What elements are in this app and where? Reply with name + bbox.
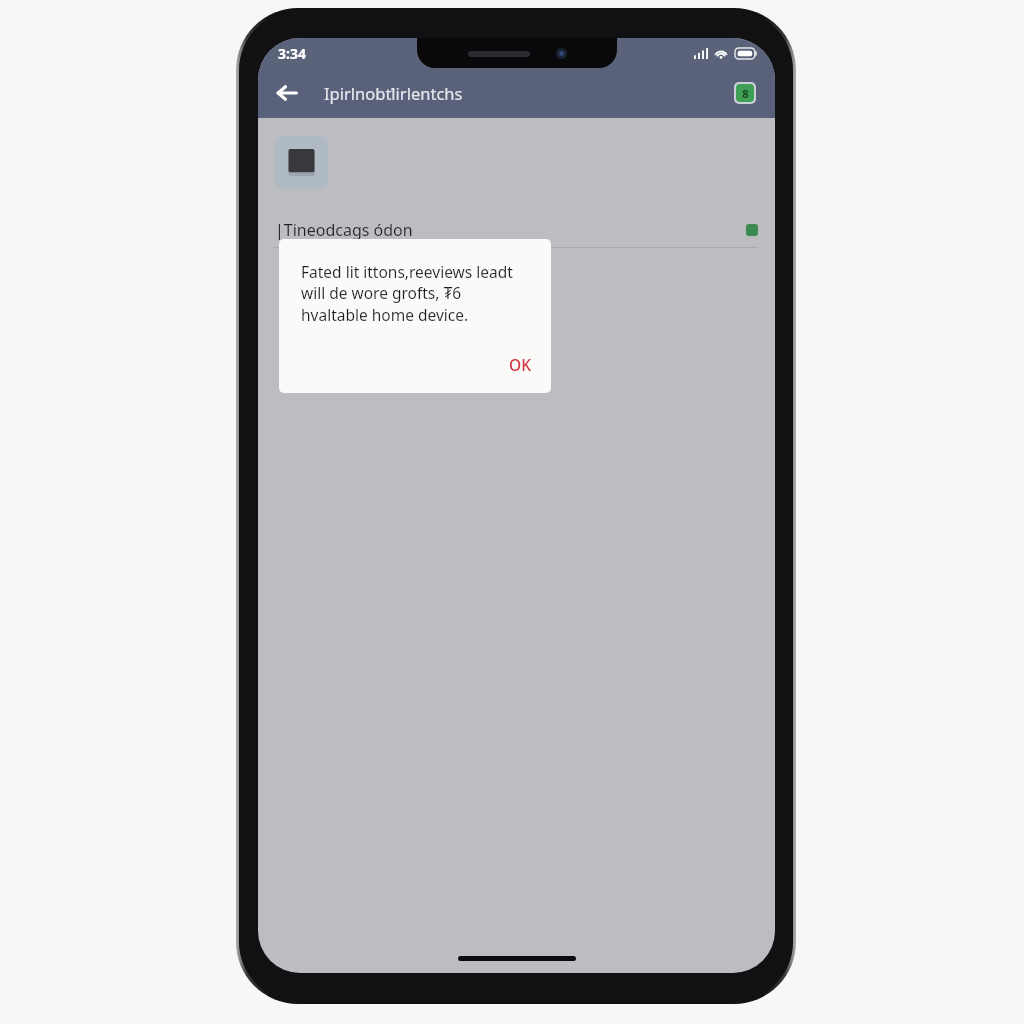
button[interactable]: OK [489, 348, 551, 381]
staticText: |Tineodcags ódon [275, 219, 746, 241]
button[interactable]: Status badge [725, 73, 765, 113]
button[interactable]: |Tineodcags ódon [258, 213, 775, 247]
staticText: Ipirlnobťlirlentchs [324, 82, 725, 104]
staticText: 3:34 [278, 44, 306, 63]
staticText: Fated lit ittons,reeviews leadt will de … [301, 261, 531, 326]
button[interactable] [275, 136, 328, 189]
staticText: 8 [742, 86, 749, 101]
staticText: OK [509, 354, 531, 375]
button[interactable]: Back [266, 72, 308, 114]
